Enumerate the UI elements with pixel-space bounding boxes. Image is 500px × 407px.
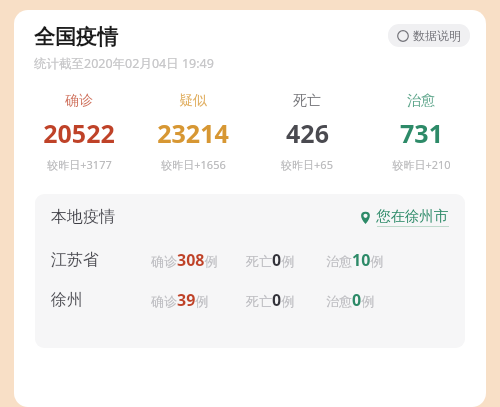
staticText: 确诊39例 (151, 289, 209, 311)
staticText: 确诊 (65, 92, 93, 110)
button[interactable]: 您在徐州市 (359, 207, 449, 227)
staticText: 较昨日+1656 (161, 157, 226, 172)
staticText: 死亡0例 (246, 249, 295, 271)
staticText: 统计截至2020年02月04日 19:49 (34, 55, 214, 72)
staticText: 较昨日+3177 (47, 157, 112, 172)
staticText: 江苏省 (51, 250, 151, 270)
button[interactable]: 疑似 (136, 92, 250, 172)
staticText: 治愈10例 (326, 249, 384, 271)
button[interactable]: 数据说明 (388, 24, 470, 47)
staticText: 治愈0例 (326, 289, 375, 311)
staticText: 本地疫情 (51, 207, 115, 227)
staticText: 23214 (157, 116, 229, 150)
staticText: 确诊308例 (151, 249, 218, 271)
staticText: 徐州 (51, 290, 151, 310)
staticText: 死亡0例 (246, 289, 295, 311)
staticText: 您在徐州市 (376, 207, 449, 225)
staticText: 426 (286, 116, 329, 150)
button[interactable]: 徐州 (35, 280, 465, 320)
staticText: 全国疫情 (34, 24, 118, 50)
button[interactable]: 江苏省 (35, 240, 465, 280)
staticText: 较昨日+65 (281, 157, 333, 172)
button[interactable]: 治愈 (364, 92, 478, 172)
staticText: 731 (400, 116, 443, 150)
staticText: 较昨日+210 (392, 157, 451, 172)
staticText: 20522 (43, 116, 115, 150)
button[interactable]: 确诊 (22, 92, 136, 172)
button[interactable]: 死亡 (250, 92, 364, 172)
staticText: 疑似 (179, 92, 207, 110)
staticText: 数据说明 (413, 28, 461, 43)
staticText: 死亡 (293, 92, 321, 110)
staticText: 治愈 (407, 92, 435, 110)
